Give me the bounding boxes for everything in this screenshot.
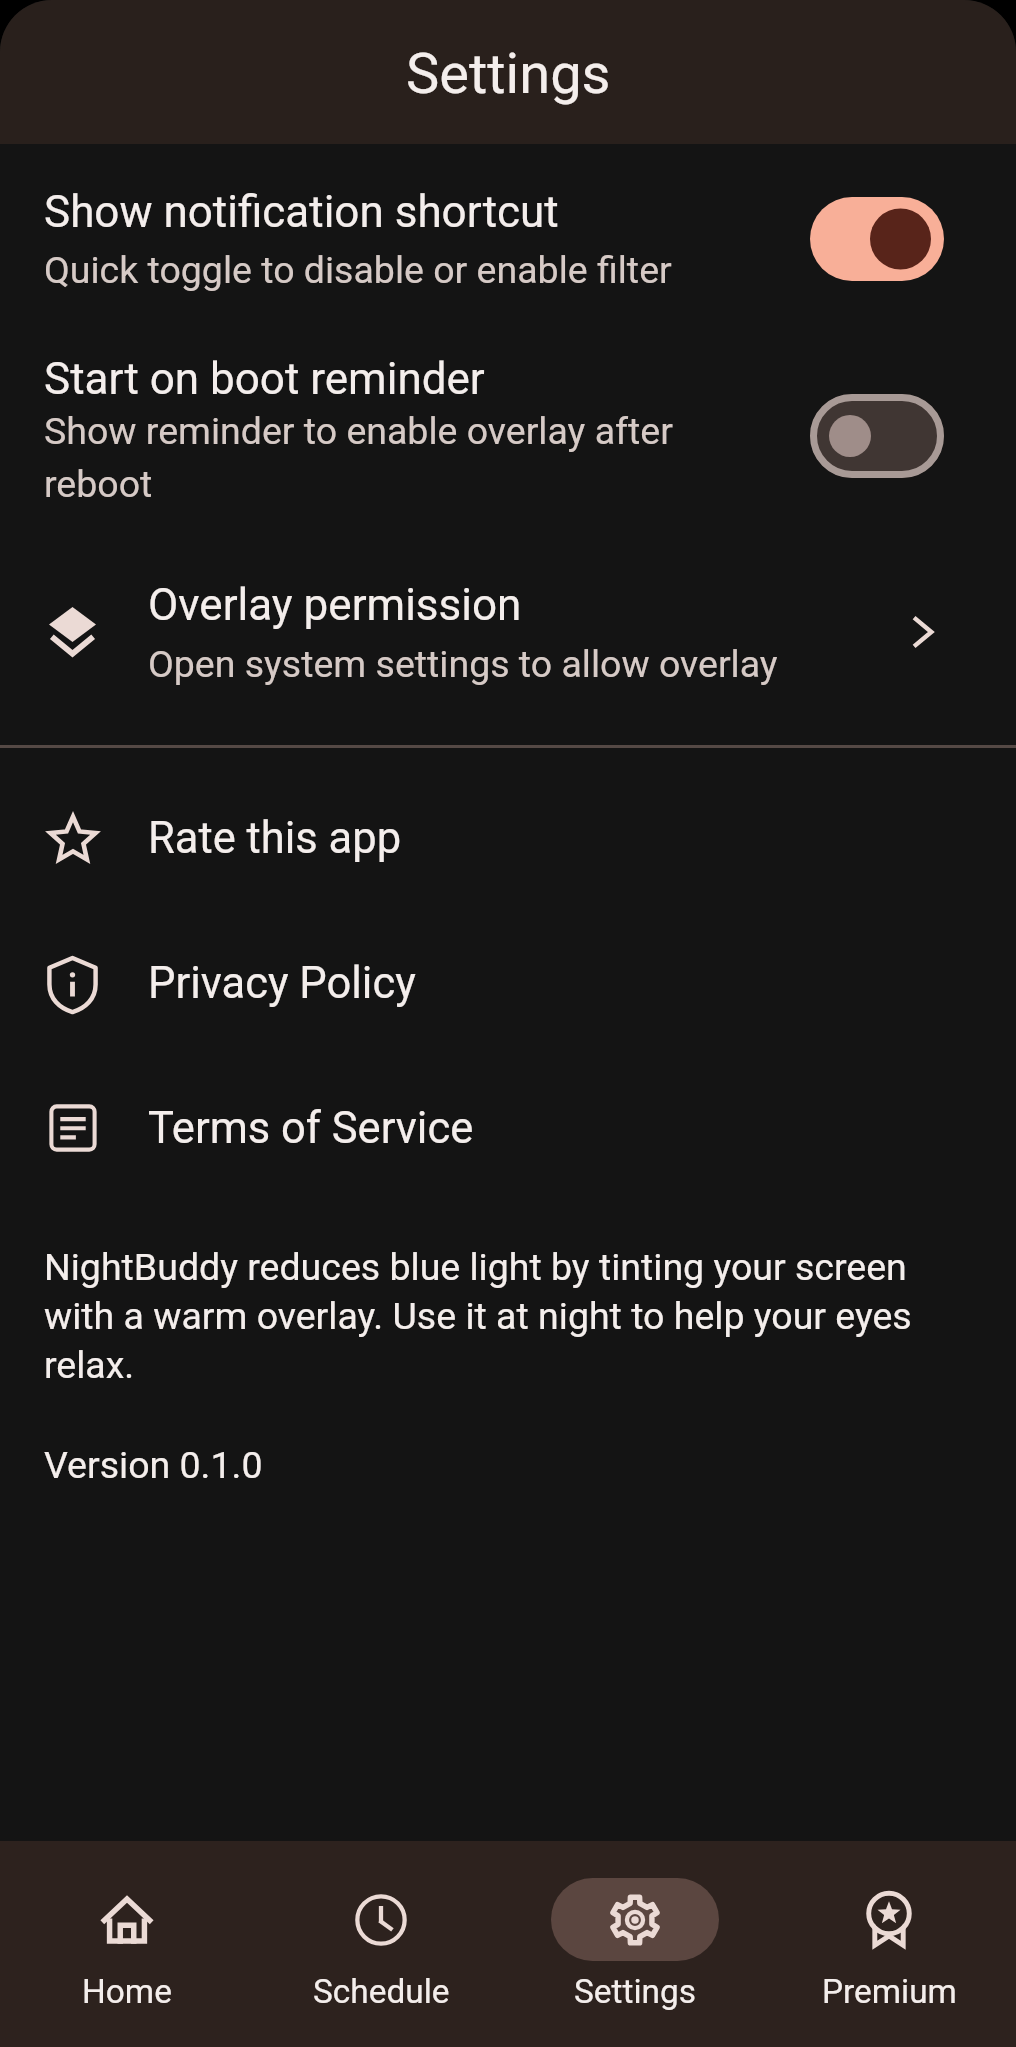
staticText: Start on boot reminder <box>44 353 485 405</box>
other: Open overlay permission settings <box>898 608 946 656</box>
button[interactable]: Terms of Service <box>0 1071 1016 1216</box>
staticText: Quick toggle to disable or enable filter <box>44 248 672 292</box>
staticText: Overlay permission <box>148 579 522 631</box>
button[interactable]: Switch on <box>810 197 944 281</box>
button[interactable]: Switch off <box>810 394 944 478</box>
staticText: Privacy Policy <box>148 958 416 1009</box>
button[interactable]: Schedule <box>254 1841 508 2047</box>
staticText: Settings <box>406 41 611 107</box>
staticText: Terms of Service <box>148 1103 474 1154</box>
staticText: Version 0.1.0 <box>44 1443 263 1487</box>
button[interactable]: Rate this app <box>0 781 1016 926</box>
button[interactable]: Overlay permission <box>0 566 1016 706</box>
button[interactable]: Show notification shortcut <box>0 166 1016 316</box>
button[interactable]: Settings <box>508 1841 762 2047</box>
staticText: Schedule <box>313 1972 450 2011</box>
staticText: Open system settings to allow overlay <box>148 642 778 686</box>
staticText: Settings <box>574 1972 696 2011</box>
button[interactable]: Premium <box>762 1841 1016 2047</box>
staticText: NightBuddy reduces blue light by tinting… <box>44 1245 974 1387</box>
button[interactable]: Start on boot reminder <box>0 333 1016 533</box>
staticText: Show notification shortcut <box>44 186 559 238</box>
staticText: Rate this app <box>148 813 402 864</box>
staticText: Premium <box>822 1972 957 2011</box>
staticText: Home <box>82 1972 172 2011</box>
button[interactable]: Home <box>0 1841 254 2047</box>
button[interactable]: Privacy Policy <box>0 926 1016 1071</box>
staticText: Show reminder to enable overlay after re… <box>44 409 724 506</box>
